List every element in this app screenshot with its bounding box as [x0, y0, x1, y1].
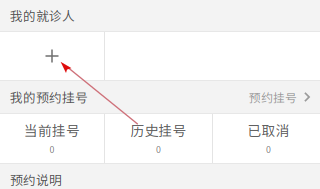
- staticText: 当前挂号: [24, 120, 80, 140]
- staticText: 我的预约挂号: [10, 88, 88, 106]
- button[interactable]: 预约挂号: [249, 82, 310, 112]
- button[interactable]: 当前挂号: [0, 114, 104, 163]
- staticText: 我的就诊人: [10, 6, 75, 25]
- button[interactable]: 历史挂号: [105, 114, 212, 163]
- staticText: 预约说明: [10, 170, 62, 189]
- staticText: 历史挂号: [130, 120, 186, 140]
- button[interactable]: 已取消: [213, 114, 320, 163]
- staticText: 0: [156, 143, 161, 156]
- staticText: 0: [266, 143, 271, 156]
- staticText: 预约挂号: [249, 88, 297, 106]
- staticText: 已取消: [247, 120, 289, 140]
- staticText: 0: [49, 143, 54, 156]
- button[interactable]: 添加就诊人: [0, 32, 104, 80]
